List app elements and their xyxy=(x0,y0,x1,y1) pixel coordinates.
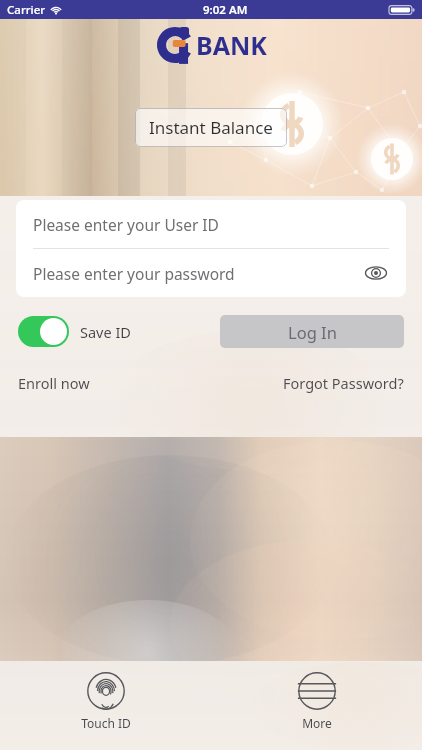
staticText: Enroll now xyxy=(18,373,90,393)
button[interactable]: Forgot Password? xyxy=(283,373,404,393)
staticText: Carrier xyxy=(7,2,46,18)
staticText: Touch ID xyxy=(81,715,131,731)
staticText: More xyxy=(302,715,332,731)
button[interactable]: Please enter your password xyxy=(16,249,406,297)
staticText: Save ID xyxy=(80,322,131,342)
staticText: Forgot Password? xyxy=(283,373,404,393)
button[interactable]: Enroll now xyxy=(18,373,90,393)
button[interactable]: Please enter your User ID xyxy=(16,200,406,248)
button[interactable]: Log In xyxy=(220,315,404,348)
button[interactable]: Show password xyxy=(363,260,389,286)
staticText: BANK xyxy=(196,28,267,62)
staticText: Please enter your password xyxy=(33,263,235,284)
staticText: Log In xyxy=(288,321,337,343)
button[interactable]: More xyxy=(286,661,348,737)
staticText: 9:02 AM xyxy=(203,2,248,18)
button[interactable]: Save ID xyxy=(18,316,131,347)
button[interactable]: Touch ID xyxy=(69,661,143,737)
staticText: Please enter your User ID xyxy=(33,214,219,235)
button[interactable]: Instant Balance xyxy=(135,108,287,147)
staticText: Instant Balance xyxy=(149,116,273,139)
